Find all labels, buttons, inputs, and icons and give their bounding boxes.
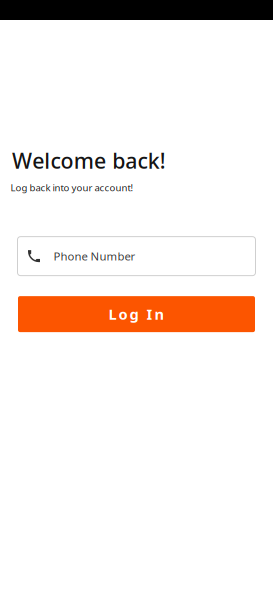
button[interactable]: Log In [18, 296, 255, 332]
staticText: Log back into your account! [10, 181, 133, 194]
staticText: Log In [108, 304, 164, 324]
staticText: Welcome back! [12, 146, 166, 175]
button[interactable]: Phone Number [17, 236, 256, 276]
staticText: Phone Number [53, 248, 135, 264]
